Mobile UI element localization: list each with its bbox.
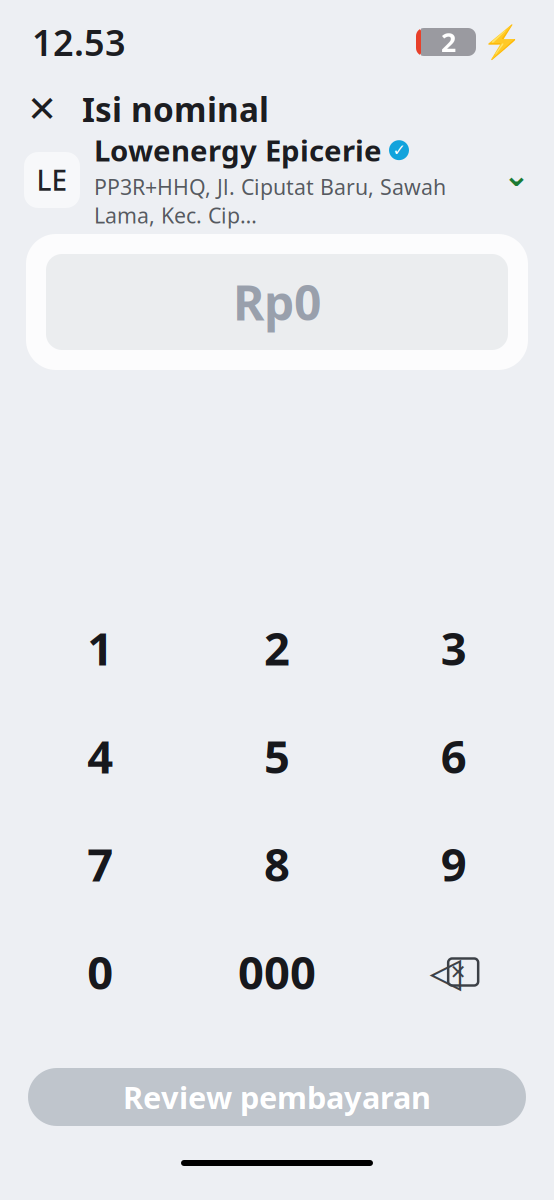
button[interactable]: Delete (365, 918, 542, 1026)
staticText: ⌄ (503, 157, 530, 193)
staticText: 000 (238, 942, 316, 1002)
staticText: Rp0 (233, 270, 321, 334)
staticText: 5 (264, 726, 290, 786)
button[interactable]: 9 (365, 810, 542, 918)
button[interactable]: 0 (12, 918, 189, 1026)
button[interactable]: Close (16, 83, 68, 135)
staticText: 7 (87, 834, 113, 894)
button[interactable]: 7 (12, 810, 189, 918)
button[interactable]: 8 (189, 810, 365, 918)
staticText: ✕ (450, 961, 467, 983)
button[interactable]: 5 (189, 702, 365, 810)
staticText: 12.53 (32, 18, 126, 66)
button[interactable]: 6 (365, 702, 542, 810)
staticText: 1 (87, 618, 113, 678)
staticText: 8 (264, 834, 290, 894)
staticText: Lowenergy Epicerie (94, 131, 382, 170)
staticText: 3 (441, 618, 467, 678)
button[interactable]: LE (0, 140, 554, 220)
staticText: ✓ (392, 141, 405, 159)
button[interactable]: 2 (189, 594, 365, 702)
staticText: 6 (441, 726, 467, 786)
button[interactable]: 1 (12, 594, 189, 702)
button[interactable]: 000 (189, 918, 365, 1026)
staticText: Review pembayaran (123, 1077, 431, 1117)
staticText: PP3R+HHQ, Jl. Ciputat Baru, Sawah Lama, … (94, 173, 446, 229)
staticText: ⚡ (482, 24, 522, 60)
staticText: LE (36, 161, 67, 199)
staticText: 2 (264, 618, 290, 678)
button[interactable]: Review pembayaran (0, 1026, 554, 1126)
staticText: ✕ (27, 89, 57, 129)
button[interactable]: 4 (12, 702, 189, 810)
button[interactable]: 3 (365, 594, 542, 702)
staticText: ◁ (429, 948, 461, 995)
staticText: 9 (441, 834, 467, 894)
staticText: 4 (87, 726, 113, 786)
staticText: 2 (441, 24, 456, 60)
staticText: 0 (87, 942, 113, 1002)
staticText: Isi nominal (82, 87, 269, 131)
button[interactable]: Rp0 (0, 220, 554, 370)
